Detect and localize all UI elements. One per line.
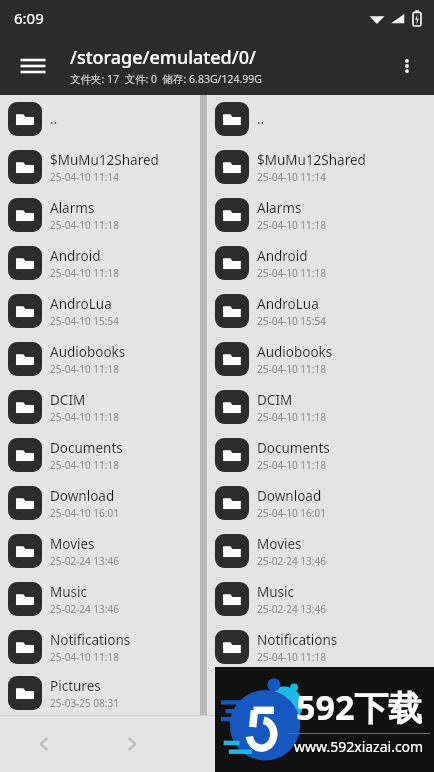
staticText: Audiobooks [257,343,333,361]
staticText: Movies [257,535,302,553]
button[interactable]: Forward [88,716,176,772]
staticText: 25-02-24 13:46 [50,602,119,616]
button[interactable]: Movies [0,527,200,575]
staticText: 25-02-24 13:46 [50,554,119,568]
staticText: 文件夹: 17 文件: 0 储存: 6.83G/124.99G [70,72,262,86]
staticText: 25-04-10 11:18 [257,410,326,424]
button[interactable]: AndroLua [0,287,200,335]
staticText: 25-03-25 08:31 [257,696,326,710]
button[interactable]: $MuMu12Shared [207,143,434,191]
button[interactable]: Movies [207,527,434,575]
button[interactable]: Download [0,479,200,527]
staticText: Audiobooks [50,343,126,361]
button[interactable]: Download [207,479,434,527]
button[interactable]: DCIM [207,383,434,431]
staticText: $MuMu12Shared [257,151,366,169]
button[interactable]: Documents [207,431,434,479]
button[interactable]: DCIM [0,383,200,431]
staticText: Music [50,583,88,601]
staticText: 25-02-24 13:46 [257,602,326,616]
staticText: 25-04-10 11:18 [50,266,119,280]
staticText: Movies [50,535,95,553]
staticText: AndroLua [50,295,112,313]
staticText: www.592xiazai.com [294,737,424,756]
staticText: Pictures [257,677,308,695]
staticText: 25-04-10 11:18 [50,410,119,424]
staticText: 592下载 [296,684,423,730]
staticText: Documents [50,439,123,457]
staticText: 25-04-10 11:18 [50,218,119,232]
button[interactable]: Menu [10,43,56,89]
button[interactable]: Alarms [207,191,434,239]
button[interactable]: $MuMu12Shared [0,143,200,191]
button[interactable]: .. [207,95,434,143]
button[interactable]: Alarms [0,191,200,239]
staticText: .. [257,110,265,128]
staticText: Android [50,247,101,265]
staticText: 25-04-10 16:01 [50,506,119,520]
staticText: Notifications [257,631,338,649]
staticText: 25-04-10 11:18 [50,650,119,664]
button[interactable]: More options [386,45,428,87]
staticText: Android [257,247,308,265]
button[interactable]: AndroLua [207,287,434,335]
button[interactable]: Music [207,575,434,623]
button[interactable]: Pictures [0,671,200,715]
staticText: 25-03-25 08:31 [50,696,119,710]
staticText: Notifications [50,631,131,649]
staticText: Documents [257,439,330,457]
staticText: 25-04-10 11:14 [50,170,119,184]
staticText: 25-04-10 11:18 [257,458,326,472]
button[interactable]: Audiobooks [207,335,434,383]
staticText: 25-04-10 11:18 [257,266,326,280]
button[interactable]: Android [207,239,434,287]
staticText: Pictures [50,677,101,695]
staticText: 25-04-10 11:18 [257,362,326,376]
staticText: 6:09 [14,8,44,28]
staticText: /storage/emulated/0/ [70,45,256,70]
staticText: Download [50,487,115,505]
button[interactable]: Pictures [207,671,434,715]
staticText: Alarms [257,199,302,217]
staticText: 25-04-10 11:18 [50,458,119,472]
staticText: 25-04-10 11:18 [50,362,119,376]
staticText: .. [50,110,58,128]
staticText: $MuMu12Shared [50,151,159,169]
staticText: 25-02-24 13:46 [257,554,326,568]
button[interactable]: .. [0,95,200,143]
button[interactable]: Audiobooks [0,335,200,383]
button[interactable]: Notifications [207,623,434,671]
staticText: AndroLua [257,295,319,313]
staticText: 25-04-10 15:54 [257,314,326,328]
button[interactable]: Android [0,239,200,287]
button[interactable]: Back [0,716,88,772]
staticText: 25-04-10 11:18 [257,218,326,232]
staticText: DCIM [50,391,86,409]
staticText: Alarms [50,199,95,217]
button[interactable]: Documents [0,431,200,479]
button[interactable]: Music [0,575,200,623]
staticText: 25-04-10 11:14 [257,170,326,184]
staticText: Music [257,583,295,601]
button[interactable]: Notifications [0,623,200,671]
staticText: Download [257,487,322,505]
staticText: DCIM [257,391,293,409]
staticText: 25-04-10 11:18 [257,650,326,664]
staticText: 25-04-10 16:01 [257,506,326,520]
staticText: 25-04-10 15:54 [50,314,119,328]
